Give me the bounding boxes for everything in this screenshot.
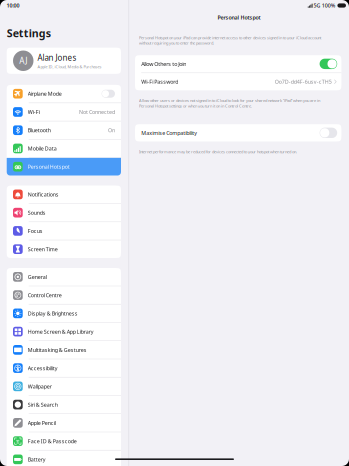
button[interactable]: Face ID & Passcode xyxy=(7,432,121,450)
button[interactable]: Apple Pencil xyxy=(7,414,121,432)
button[interactable]: Siri & Search xyxy=(7,396,121,413)
staticText: Multitasking & Gestures xyxy=(28,346,87,353)
button[interactable]: Battery xyxy=(7,450,121,466)
staticText: Mobile Data xyxy=(28,145,57,152)
staticText: Siri & Search xyxy=(28,401,58,408)
button[interactable]: Airplane Mode xyxy=(7,85,121,103)
button[interactable]: Mobile Data xyxy=(7,140,121,157)
button[interactable]: Maximise Compatibility xyxy=(135,124,341,141)
staticText: Settings xyxy=(7,26,51,40)
staticText: Personal Hotspot xyxy=(217,14,260,21)
staticText: 5G xyxy=(314,2,321,9)
staticText: 10:00 xyxy=(6,2,19,9)
staticText: Display & Brightness xyxy=(28,310,78,317)
staticText: Allow Others to Join xyxy=(141,60,186,67)
button[interactable]: Home Screen & App Library xyxy=(7,323,121,340)
button[interactable]: Allow Others to Join xyxy=(135,55,341,72)
staticText: Internet performance may be reduced for … xyxy=(139,149,297,154)
staticText: Wi-Fi Password xyxy=(141,78,178,85)
staticText: On xyxy=(108,127,115,134)
staticText: Personal Hotspot xyxy=(28,163,70,170)
staticText: Maximise Compatibility xyxy=(141,129,197,136)
staticText: Wi-Fi xyxy=(28,108,40,115)
staticText: Allow other users or devices not signed … xyxy=(139,98,320,108)
button[interactable]: Focus xyxy=(7,222,121,240)
staticText: Focus xyxy=(28,227,43,234)
staticText: Accessibility xyxy=(28,365,58,372)
staticText: Oo7D-dd4F-6usv-cTH5 xyxy=(275,78,332,85)
staticText: AJ xyxy=(19,55,27,66)
button[interactable]: General xyxy=(7,268,121,286)
button[interactable]: Control Centre xyxy=(7,286,121,304)
staticText: General xyxy=(28,273,47,280)
staticText: Apple ID, iCloud, Media & Purchases xyxy=(37,64,101,69)
button[interactable]: Wi-Fi Password xyxy=(135,73,341,90)
staticText: Battery xyxy=(28,456,46,463)
button[interactable]: Personal Hotspot xyxy=(7,158,121,176)
staticText: Airplane Mode xyxy=(28,90,62,97)
button[interactable]: Screen Time xyxy=(7,240,121,258)
staticText: Screen Time xyxy=(28,246,58,253)
button[interactable]: Wi-Fi xyxy=(7,103,121,121)
staticText: Bluetooth xyxy=(28,127,51,134)
staticText: Wallpaper xyxy=(28,383,52,390)
button[interactable]: Notifications xyxy=(7,186,121,203)
button[interactable]: Sounds xyxy=(7,204,121,221)
staticText: 100% xyxy=(322,2,336,9)
button[interactable]: Accessibility xyxy=(7,359,121,377)
button[interactable]: Display & Brightness xyxy=(7,304,121,322)
staticText: Control Centre xyxy=(28,292,62,299)
button[interactable]: Wallpaper xyxy=(7,377,121,395)
button[interactable]: Multitasking & Gestures xyxy=(7,341,121,359)
staticText: Apple Pencil xyxy=(28,419,56,426)
button[interactable]: Bluetooth xyxy=(7,121,121,139)
staticText: Face ID & Passcode xyxy=(28,438,77,445)
staticText: Notifications xyxy=(28,191,59,198)
staticText: Alan Jones xyxy=(37,52,76,63)
staticText: Not Connected xyxy=(79,108,115,115)
staticText: Sounds xyxy=(28,209,46,216)
staticText: Home Screen & App Library xyxy=(28,328,94,335)
button[interactable]: AJ xyxy=(7,48,121,74)
staticText: Personal Hotspot on your iPad can provid… xyxy=(139,35,321,46)
